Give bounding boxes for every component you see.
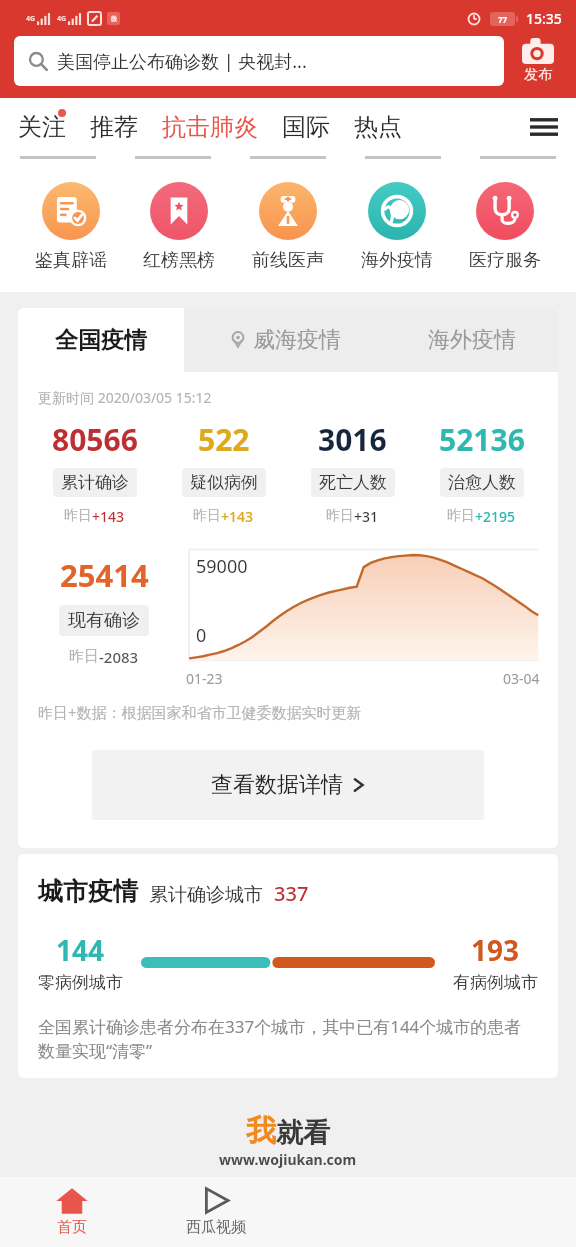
staticText: 抗击肺炎 xyxy=(162,112,258,142)
button[interactable]: 更多频道 xyxy=(512,98,576,156)
button[interactable]: 国际 xyxy=(282,98,330,156)
staticText: 01-23 xyxy=(186,669,223,688)
staticText: 零病例城市 xyxy=(38,972,123,993)
staticText: -2083 xyxy=(99,647,139,667)
button[interactable]: 热点 xyxy=(354,98,402,156)
staticText: 4G xyxy=(26,14,36,24)
button[interactable]: 西瓜视频 xyxy=(144,1177,288,1247)
staticText: 死亡人数 xyxy=(319,472,387,493)
staticText: 治愈人数 xyxy=(448,472,516,493)
button[interactable]: 关注 xyxy=(18,98,66,156)
staticText: +143 xyxy=(221,507,254,526)
button[interactable]: 前线医声 xyxy=(250,182,326,272)
button[interactable]: 抗击肺炎 xyxy=(162,98,258,156)
staticText: 西瓜视频 xyxy=(186,1218,246,1237)
staticText: 更新时间 2020/03/05 15:12 xyxy=(38,388,212,407)
staticText: 59000 xyxy=(196,554,248,579)
button[interactable]: 威海疫情 xyxy=(184,308,385,372)
staticText: +31 xyxy=(354,507,379,526)
staticText: 现有确诊 xyxy=(68,609,140,632)
staticText: 03-04 xyxy=(503,669,540,688)
staticText: 美国停止公布确诊数 | 央视封... xyxy=(57,49,307,74)
staticText: 144 xyxy=(56,931,105,969)
staticText: 522 xyxy=(198,419,250,460)
staticText: 鉴真辟谣 xyxy=(35,249,107,272)
staticText: 193 xyxy=(471,931,520,969)
staticText: 医疗服务 xyxy=(469,249,541,272)
staticText: 城市疫情 xyxy=(38,876,138,907)
staticText: 15:35 xyxy=(526,9,562,28)
button[interactable]: 发布 xyxy=(508,38,568,84)
staticText: 25414 xyxy=(60,554,149,596)
staticText: 发布 xyxy=(524,66,552,84)
staticText: 昨日 xyxy=(326,507,354,525)
staticText: 微 xyxy=(111,15,117,23)
staticText: 昨日 xyxy=(193,507,221,525)
staticText: 前线医声 xyxy=(252,249,324,272)
staticText: 337 xyxy=(274,880,309,907)
staticText: 3016 xyxy=(318,419,387,460)
staticText: 4G xyxy=(57,14,67,24)
staticText: 推荐 xyxy=(90,112,138,142)
staticText: 累计确诊城市 xyxy=(149,883,263,907)
staticText: 就看 xyxy=(276,1116,330,1150)
staticText: 全国疫情 xyxy=(55,326,147,355)
button[interactable]: 美国停止公布确诊数 | 央视封... xyxy=(14,36,504,86)
staticText: 红榜黑榜 xyxy=(143,249,215,272)
staticText: 疑似病例 xyxy=(190,472,258,493)
staticText: 0 xyxy=(196,623,207,648)
staticText: +143 xyxy=(92,507,125,526)
staticText: 累计确诊 xyxy=(61,472,129,493)
staticText: 77 xyxy=(498,14,508,25)
staticText: 关注 xyxy=(18,112,66,142)
staticText: 首页 xyxy=(57,1218,87,1237)
staticText: 全国累计确诊患者分布在337个城市，其中已有144个城市的患者数量实现“清零” xyxy=(38,1015,538,1062)
button[interactable]: 首页 xyxy=(0,1177,144,1247)
staticText: 有病例城市 xyxy=(453,972,538,993)
staticText: www.wojiukan.com xyxy=(219,1150,357,1169)
button[interactable]: 海外疫情 xyxy=(385,308,558,372)
staticText: 热点 xyxy=(354,112,402,142)
staticText: 查看数据详情 xyxy=(211,771,343,799)
button[interactable]: 红榜黑榜 xyxy=(141,182,217,272)
staticText: 80566 xyxy=(52,419,138,460)
button[interactable]: 全国疫情 xyxy=(18,308,184,372)
button[interactable]: 医疗服务 xyxy=(467,182,543,272)
button[interactable]: 推荐 xyxy=(90,98,138,156)
button[interactable]: 海外疫情 xyxy=(359,182,435,272)
staticText: 昨日 xyxy=(64,507,92,525)
staticText: 昨日 xyxy=(69,647,99,666)
staticText: 威海疫情 xyxy=(253,326,341,354)
staticText: 海外疫情 xyxy=(361,249,433,272)
staticText: 昨日+数据：根据国家和省市卫健委数据实时更新 xyxy=(38,702,362,722)
staticText: 我 xyxy=(246,1112,276,1150)
button[interactable]: 鉴真辟谣 xyxy=(33,182,109,272)
staticText: +2195 xyxy=(475,507,516,526)
button[interactable]: 查看数据详情 xyxy=(92,750,484,820)
staticText: 52136 xyxy=(439,419,525,460)
staticText: 海外疫情 xyxy=(428,326,516,354)
staticText: 昨日 xyxy=(447,507,475,525)
staticText: 国际 xyxy=(282,112,330,142)
